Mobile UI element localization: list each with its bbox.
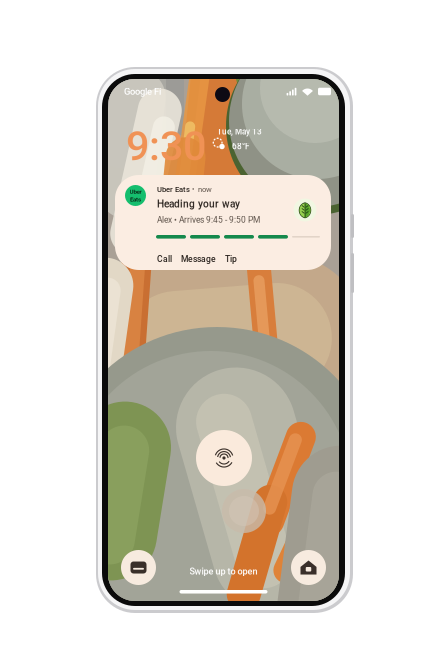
button[interactable]: Tip xyxy=(225,253,245,265)
button[interactable]: Unlock with fingerprint xyxy=(196,430,252,486)
staticText: Uber xyxy=(129,188,141,195)
button[interactable]: Uber xyxy=(115,175,331,270)
staticText: Tue, May 13 xyxy=(217,127,262,136)
staticText: Alex • Arrives 9:45 - 9:50 PM xyxy=(157,215,260,225)
button[interactable]: Home xyxy=(291,550,326,585)
staticText: 9:30 xyxy=(126,122,206,170)
staticText: • xyxy=(192,185,194,193)
staticText: Tip xyxy=(225,254,237,264)
staticText: Uber Eats xyxy=(157,185,190,194)
staticText: Eats xyxy=(130,196,141,203)
staticText: 68°F xyxy=(232,142,249,151)
staticText: now xyxy=(198,185,212,194)
staticText: Swipe up to open xyxy=(189,566,257,577)
staticText: Call xyxy=(157,254,172,264)
staticText: Heading your way xyxy=(157,198,240,210)
staticText: Google Fi xyxy=(124,86,161,97)
button[interactable]: Message xyxy=(181,253,225,265)
button[interactable]: Call xyxy=(157,253,181,265)
button[interactable]: Wallet xyxy=(121,550,156,585)
staticText: Message xyxy=(181,254,216,264)
